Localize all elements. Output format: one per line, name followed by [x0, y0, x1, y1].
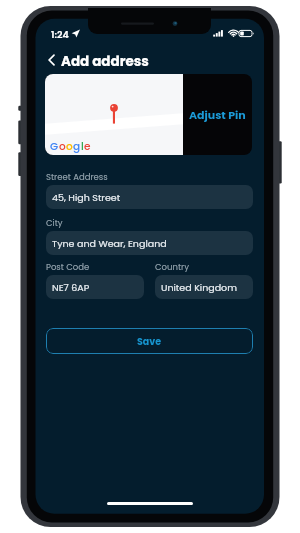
- button[interactable]: United Kingdom: [155, 275, 253, 299]
- staticText: City: [46, 217, 63, 229]
- staticText: l: [81, 139, 84, 154]
- button[interactable]: 45, High Street: [46, 185, 253, 209]
- staticText: g: [73, 139, 81, 154]
- staticText: Street Address: [46, 171, 108, 183]
- staticText: Save: [137, 335, 162, 348]
- staticText: e: [84, 139, 91, 154]
- staticText: Adjust Pin: [189, 107, 246, 122]
- staticText: Add address: [61, 52, 149, 71]
- staticText: G: [50, 139, 59, 154]
- staticText: Tyne and Wear, England: [52, 237, 167, 250]
- staticText: o: [59, 139, 66, 154]
- button[interactable]: Back: [43, 50, 59, 70]
- button[interactable]: Tyne and Wear, England: [46, 231, 253, 255]
- staticText: Post Code: [46, 261, 90, 273]
- staticText: NE7 6AP: [52, 281, 90, 294]
- staticText: 1:24: [51, 28, 69, 41]
- button[interactable]: Save: [46, 328, 253, 354]
- staticText: United Kingdom: [161, 281, 237, 294]
- staticText: o: [66, 139, 73, 154]
- staticText: 45, High Street: [52, 191, 121, 204]
- button[interactable]: Adjust Pin: [183, 74, 252, 155]
- staticText: Country: [155, 261, 189, 273]
- button[interactable]: NE7 6AP: [46, 275, 144, 299]
